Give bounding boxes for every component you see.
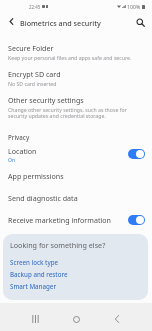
button[interactable]: Backup and restore — [10, 270, 68, 278]
button[interactable]: Screen lock type — [10, 258, 59, 266]
button[interactable]: Navigate up — [2, 12, 20, 30]
staticText: Keep your personal files and apps safe a… — [8, 54, 140, 61]
button[interactable]: Other security settings — [0, 93, 152, 119]
button[interactable]: Search — [131, 13, 149, 31]
staticText: Send diagnostic data — [8, 193, 78, 203]
button[interactable]: Smart Manager — [10, 282, 57, 290]
button[interactable]: Receive marketing information — [0, 210, 152, 230]
staticText: Receive marketing information — [8, 215, 111, 225]
staticText: Other security settings — [8, 95, 84, 105]
staticText: Privacy — [8, 133, 30, 141]
staticText: Backup and restore — [10, 270, 68, 278]
staticText: Location — [8, 146, 37, 156]
staticText: No SD card inserted — [8, 80, 140, 87]
staticText: Encrypt SD card — [8, 69, 61, 79]
staticText: Biometrics and security — [20, 18, 101, 28]
button[interactable]: App permissions — [0, 166, 152, 186]
button[interactable]: Location — [0, 144, 152, 164]
staticText: 100% — [127, 3, 141, 10]
staticText: App permissions — [8, 171, 64, 181]
button[interactable]: Looking for something else? — [3, 234, 148, 300]
button[interactable]: Back — [106, 308, 128, 330]
staticText: Screen lock type — [10, 258, 59, 266]
button[interactable]: Encrypt SD card — [0, 67, 152, 87]
button[interactable]: Secure Folder — [0, 41, 152, 61]
button[interactable]: Recents — [24, 308, 46, 330]
staticText: 22:45 — [29, 4, 41, 10]
staticText: Looking for something else? — [10, 240, 106, 250]
button[interactable]: Send diagnostic data — [0, 188, 152, 208]
staticText: Secure Folder — [8, 43, 54, 53]
button[interactable]: Home — [65, 308, 87, 330]
staticText: Smart Manager — [10, 282, 57, 290]
staticText: On — [8, 156, 16, 163]
staticText: Change other security settings, such as … — [8, 106, 140, 119]
button[interactable]: Privacy — [8, 133, 30, 141]
